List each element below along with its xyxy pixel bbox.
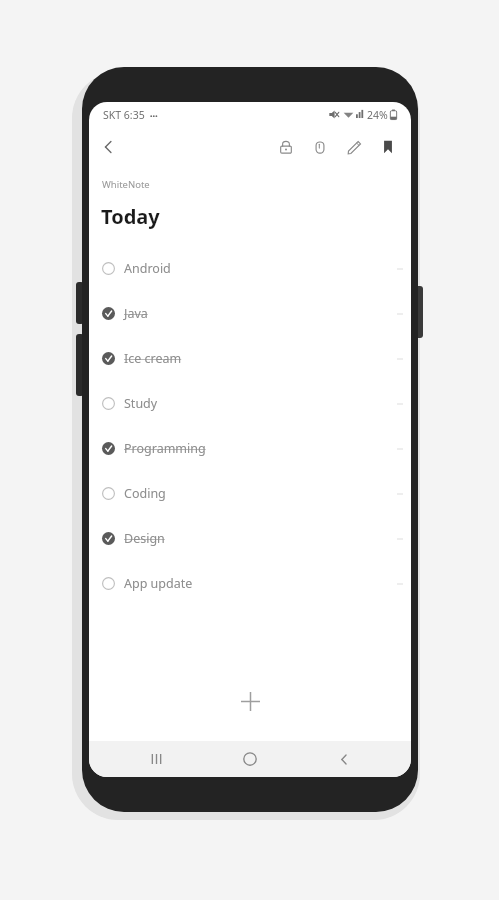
button[interactable]: Edit note — [337, 130, 371, 164]
button[interactable]: Programming — [89, 426, 411, 471]
button[interactable]: Design — [89, 516, 411, 561]
staticText: App update — [124, 575, 193, 592]
button[interactable]: Android — [89, 246, 411, 291]
button[interactable]: Back — [89, 127, 129, 167]
staticText: Study — [124, 395, 158, 412]
button[interactable]: App update — [89, 561, 411, 606]
staticText: WhiteNote — [102, 178, 150, 191]
staticText: Programming — [124, 440, 206, 457]
button[interactable]: Lock note — [269, 130, 303, 164]
button[interactable]: Java — [89, 291, 411, 336]
staticText: Coding — [124, 485, 166, 502]
staticText: SKT 6:35 — [103, 108, 145, 122]
button[interactable]: Recent apps — [129, 741, 183, 777]
staticText: Ice cream — [124, 350, 182, 367]
button[interactable]: Back — [317, 741, 371, 777]
button[interactable]: Home — [223, 741, 277, 777]
button[interactable]: Coding — [89, 471, 411, 516]
staticText: Android — [124, 260, 171, 277]
button[interactable]: Add item — [228, 679, 272, 723]
staticText: Today — [101, 203, 160, 230]
button[interactable]: Study — [89, 381, 411, 426]
staticText: 24% — [367, 108, 388, 122]
button[interactable]: Bookmark — [371, 130, 405, 164]
button[interactable]: Ice cream — [89, 336, 411, 381]
staticText: Design — [124, 530, 165, 547]
button[interactable]: Delete note — [303, 130, 337, 164]
staticText: Java — [124, 305, 148, 322]
